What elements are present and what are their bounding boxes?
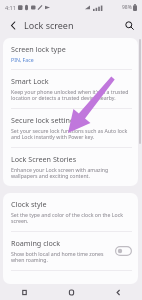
button[interactable]: Home [48, 284, 95, 300]
staticText: Keep your phone unlocked when it's in a … [11, 88, 132, 102]
button[interactable]: Roaming clock [3, 232, 138, 270]
staticText: Secure lock settings [11, 115, 78, 125]
staticText: Set the type and color of the clock on t… [11, 211, 132, 225]
button[interactable]: Screen lock type [3, 38, 138, 69]
staticText: Show both local and home time zones when… [11, 250, 111, 264]
button[interactable]: Back [6, 18, 20, 32]
button[interactable]: Lock Screen Stories [3, 148, 138, 186]
staticText: Lock Screen Stories [11, 154, 77, 164]
staticText: Enhance your Lock screen with amazing wa… [11, 166, 132, 180]
staticText: Clock style [11, 199, 47, 209]
button[interactable]: Search [122, 18, 136, 32]
staticText: Set your secure lock functions such as A… [11, 127, 132, 141]
staticText: Lock screen [24, 19, 74, 31]
button[interactable]: Recents [0, 284, 48, 300]
button[interactable]: Back [95, 284, 142, 300]
button[interactable]: Secure lock settings [3, 109, 138, 147]
staticText: Smart Lock [11, 76, 49, 86]
staticText: 4:11 [5, 4, 16, 11]
button[interactable]: Toggle [115, 246, 132, 256]
staticText: PIN, Face [11, 56, 34, 63]
button[interactable]: Smart Lock [3, 70, 138, 108]
staticText: 98% [122, 4, 132, 11]
button[interactable]: Clock style [3, 193, 138, 231]
staticText: Screen lock type [11, 44, 66, 54]
staticText: Roaming clock [11, 238, 61, 248]
